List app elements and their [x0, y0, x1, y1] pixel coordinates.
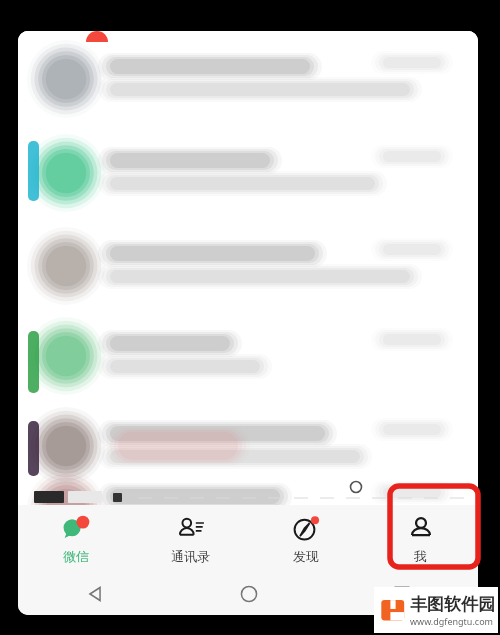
staticText: 丰图软件园 [410, 594, 495, 615]
staticText: 微信 [63, 548, 89, 564]
button[interactable]: 通讯录 [133, 505, 248, 573]
button[interactable]: 发现 [248, 505, 363, 573]
staticText: 我 [414, 548, 427, 564]
button[interactable]: Home [172, 573, 325, 615]
button[interactable]: Back [18, 573, 172, 615]
staticText: 发现 [293, 548, 319, 564]
staticText: www.dgfengtu.com [410, 615, 494, 627]
button[interactable]: 我 [363, 505, 478, 573]
staticText: 通讯录 [171, 548, 210, 564]
button[interactable]: 微信 [18, 505, 133, 573]
button[interactable]: Recent apps [325, 573, 478, 615]
